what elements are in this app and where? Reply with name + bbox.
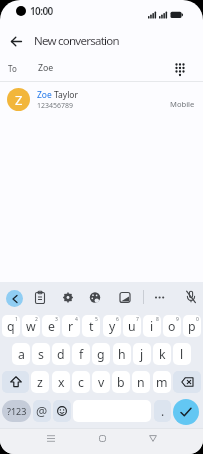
staticText: 9 — [176, 316, 179, 323]
staticText: Mobile — [170, 99, 195, 109]
staticText: p — [188, 318, 196, 335]
button[interactable] — [173, 399, 199, 425]
staticText: 5 — [95, 316, 98, 323]
staticText: g — [97, 346, 105, 363]
staticText: y — [109, 318, 116, 335]
button[interactable] — [34, 291, 46, 304]
button[interactable]: a — [12, 343, 30, 365]
button[interactable]: f — [72, 343, 90, 365]
button[interactable] — [89, 291, 101, 304]
staticText: q — [7, 318, 15, 335]
button[interactable]: k — [153, 343, 171, 365]
button[interactable] — [119, 291, 131, 304]
button[interactable] — [185, 290, 197, 304]
staticText: r — [68, 318, 74, 335]
staticText: ?123 — [7, 405, 27, 417]
button[interactable] — [6, 290, 23, 307]
button[interactable]: g — [92, 343, 110, 365]
staticText: 7 — [136, 316, 139, 323]
staticText: @ — [36, 403, 48, 420]
button[interactable]: u — [123, 315, 141, 337]
staticText: c — [78, 374, 84, 391]
staticText: 8 — [156, 316, 159, 323]
staticText: 4 — [75, 316, 78, 323]
staticText: m — [156, 374, 168, 391]
staticText: 10:00 — [30, 4, 53, 18]
button[interactable]: i — [143, 315, 161, 337]
button[interactable]: n — [132, 371, 150, 393]
staticText: o — [168, 318, 176, 335]
button[interactable]: z — [31, 371, 49, 393]
staticText: 3 — [55, 316, 58, 323]
button[interactable]: l — [173, 343, 191, 365]
staticText: e — [48, 318, 55, 335]
button[interactable]: r — [62, 315, 80, 337]
staticText: To — [8, 63, 17, 74]
button[interactable]: h — [113, 343, 131, 365]
staticText: u — [128, 318, 136, 335]
button[interactable]: To — [0, 56, 203, 81]
staticText: f — [79, 346, 84, 363]
button[interactable]: w — [22, 315, 40, 337]
button[interactable] — [145, 430, 161, 446]
button[interactable]: t — [82, 315, 100, 337]
staticText: i — [150, 318, 154, 335]
button[interactable]: ?123 — [2, 400, 31, 422]
button[interactable]: y — [103, 315, 121, 337]
button[interactable]: x — [52, 371, 70, 393]
button[interactable] — [2, 371, 29, 393]
button[interactable]: e — [42, 315, 60, 337]
button[interactable]: o — [163, 315, 181, 337]
staticText: x — [58, 374, 65, 391]
button[interactable] — [94, 430, 110, 446]
staticText: t — [89, 318, 94, 335]
button[interactable]: b — [112, 371, 130, 393]
staticText: New conversation — [34, 33, 119, 49]
staticText: Zoe — [38, 62, 54, 74]
button[interactable] — [173, 371, 201, 393]
button[interactable]: c — [72, 371, 90, 393]
button[interactable]: p — [183, 315, 201, 337]
button[interactable] — [43, 430, 59, 446]
staticText: Zoe Taylor — [37, 89, 79, 101]
staticText: 1 — [15, 316, 18, 323]
staticText: s — [38, 346, 44, 363]
button[interactable]: q — [2, 315, 20, 337]
button[interactable]: . — [154, 400, 171, 422]
button[interactable] — [62, 291, 74, 304]
staticText: d — [57, 346, 65, 363]
staticText: 123456789 — [37, 101, 74, 111]
staticText: v — [98, 374, 105, 391]
button[interactable]: j — [133, 343, 151, 365]
staticText: n — [137, 374, 145, 391]
button[interactable]: d — [52, 343, 70, 365]
staticText: b — [117, 374, 125, 391]
button[interactable]: m — [153, 371, 171, 393]
staticText: j — [140, 346, 144, 363]
staticText: k — [159, 346, 166, 363]
staticText: Z — [15, 91, 23, 109]
staticText: a — [18, 346, 25, 363]
staticText: z — [37, 374, 43, 391]
button[interactable]: Z — [0, 82, 203, 116]
button[interactable]: v — [92, 371, 110, 393]
staticText: 0 — [196, 316, 199, 323]
button[interactable] — [153, 291, 169, 304]
button[interactable] — [53, 400, 71, 422]
button[interactable] — [6, 31, 26, 51]
staticText: . — [161, 403, 165, 419]
staticText: w — [26, 318, 36, 335]
staticText: 6 — [116, 316, 119, 323]
button[interactable]: @ — [33, 400, 51, 422]
staticText: h — [118, 346, 126, 363]
staticText: 2 — [35, 316, 38, 323]
button[interactable]: s — [32, 343, 50, 365]
staticText: l — [180, 346, 184, 363]
